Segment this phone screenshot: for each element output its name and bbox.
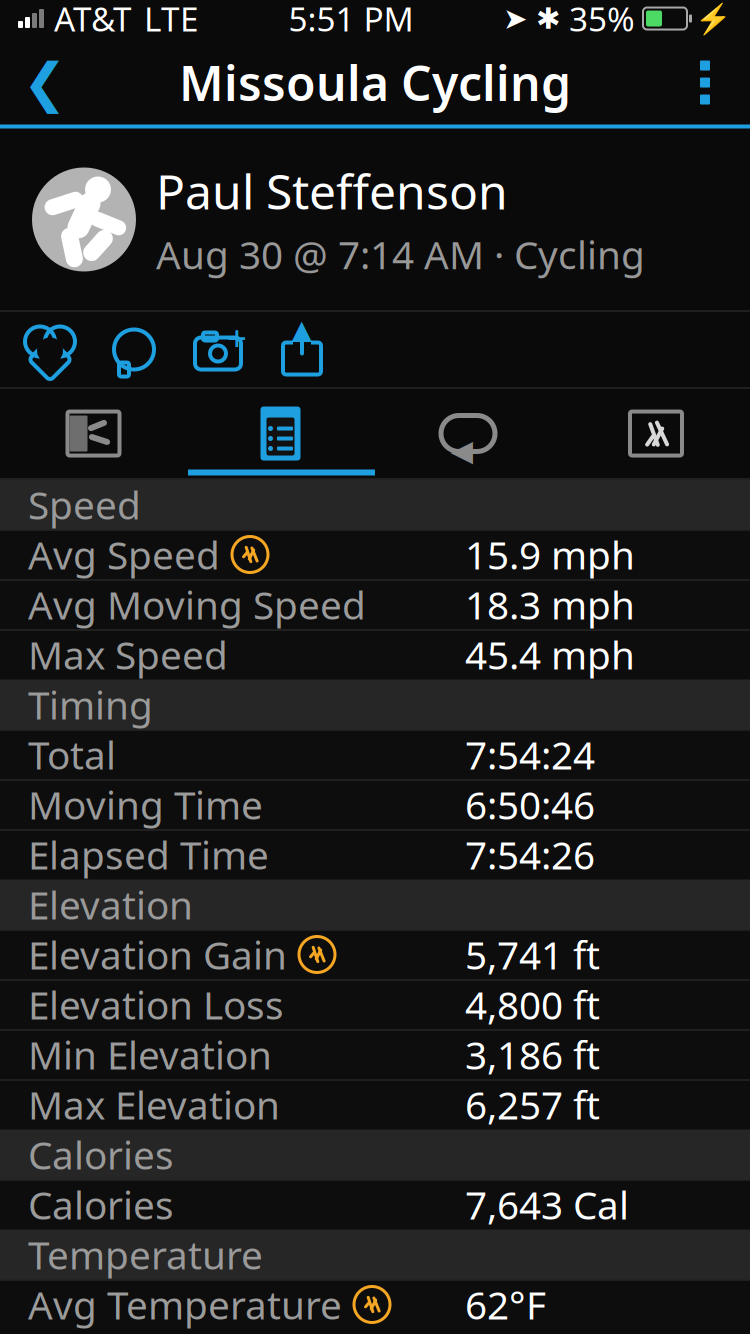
- button[interactable]: Max Speed: [0, 629, 750, 679]
- button[interactable]: Elevation Loss: [0, 979, 750, 1029]
- button[interactable]: Calories: [0, 1179, 750, 1229]
- staticText: AT&T: [54, 0, 132, 41]
- staticText: ◀: [450, 434, 473, 467]
- staticText: Calories: [28, 1179, 174, 1230]
- staticText: Avg Speed: [28, 529, 220, 580]
- button[interactable]: Total: [0, 729, 750, 779]
- staticText: Elapsed Time: [28, 829, 269, 880]
- staticText: Calories: [28, 1129, 174, 1180]
- staticText: Aug 30 @ 7:14 AM · Cycling: [156, 229, 645, 280]
- staticText: Missoula Cycling: [179, 51, 571, 114]
- button[interactable]: Paul Steffenson: [0, 128, 750, 310]
- button[interactable]: Map: [0, 391, 187, 475]
- staticText: Avg Temperature: [28, 1279, 342, 1330]
- staticText: LTE: [144, 0, 199, 41]
- button[interactable]: Elevation Gain: [0, 929, 750, 979]
- staticText: Timing: [28, 679, 153, 730]
- staticText: Paul Steffenson: [156, 159, 508, 223]
- staticText: 4,800 ft: [465, 979, 600, 1030]
- staticText: 5,741 ft: [465, 929, 600, 980]
- staticText: Elevation Gain: [28, 929, 287, 980]
- staticText: 62°F: [465, 1279, 546, 1330]
- staticText: ▲: [291, 314, 312, 345]
- staticText: 7:54:26: [465, 829, 595, 880]
- button[interactable]: Avg Moving Speed: [0, 579, 750, 629]
- staticText: Temperature: [28, 1229, 263, 1280]
- button[interactable]: Details: [187, 391, 374, 475]
- staticText: 7:54:24: [465, 729, 595, 780]
- staticText: Min Elevation: [28, 1029, 272, 1080]
- staticText: 15.9 mph: [465, 529, 635, 580]
- button[interactable]: Charts: [562, 391, 750, 475]
- staticText: Elevation: [28, 879, 193, 930]
- staticText: Max Elevation: [28, 1079, 280, 1130]
- staticText: ❮: [22, 52, 67, 113]
- button[interactable]: Moving Time: [0, 779, 750, 829]
- button[interactable]: Share: [268, 313, 336, 385]
- staticText: Moving Time: [28, 779, 263, 830]
- staticText: Avg Moving Speed: [28, 579, 366, 630]
- staticText: 6,257 ft: [465, 1079, 600, 1130]
- staticText: 3,186 ft: [465, 1029, 600, 1080]
- button[interactable]: Min Elevation: [0, 1029, 750, 1079]
- staticText: 18.3 mph: [465, 579, 635, 630]
- button[interactable]: More options: [670, 40, 740, 124]
- button[interactable]: Max Elevation: [0, 1079, 750, 1129]
- staticText: Speed: [28, 479, 141, 530]
- staticText: 35%: [569, 0, 635, 41]
- staticText: 7,643 Cal: [465, 1179, 629, 1230]
- staticText: 6:50:46: [465, 779, 595, 830]
- button[interactable]: Back: [10, 40, 80, 124]
- staticText: ➤: [503, 2, 528, 35]
- button[interactable]: Avg Temperature: [0, 1279, 750, 1329]
- button[interactable]: Avg Speed: [0, 529, 750, 579]
- staticText: Total: [28, 729, 116, 780]
- staticText: 5:51 PM: [288, 0, 413, 41]
- staticText: +: [227, 314, 247, 360]
- button[interactable]: Like: [16, 313, 84, 385]
- staticText: Max Speed: [28, 629, 228, 680]
- staticText: Elevation Loss: [28, 979, 284, 1030]
- button[interactable]: Elapsed Time: [0, 829, 750, 879]
- button[interactable]: Comment: [100, 313, 168, 385]
- staticText: 45.4 mph: [465, 629, 635, 680]
- button[interactable]: Add photo: [184, 313, 252, 385]
- staticText: ⚡: [695, 2, 732, 35]
- button[interactable]: Laps: [374, 391, 562, 475]
- staticText: ✱: [536, 2, 561, 35]
